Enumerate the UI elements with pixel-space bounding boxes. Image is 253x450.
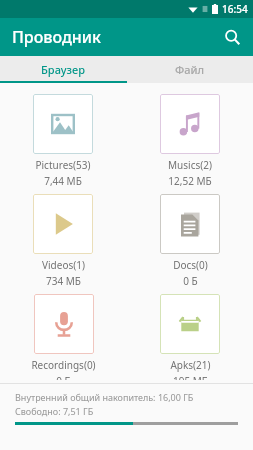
staticText: 734 МБ: [46, 274, 81, 288]
staticText: Docs(0): [173, 258, 208, 272]
staticText: Recordings(0): [31, 358, 96, 372]
staticText: 195 МБ: [173, 374, 208, 380]
staticText: Браузер: [41, 62, 85, 77]
staticText: 7,44 МБ: [44, 174, 82, 188]
staticText: 12,52 МБ: [168, 174, 212, 188]
button[interactable]: Videos(1): [33, 191, 93, 291]
staticText: Внутренний общий накопитель: 16,00 ГБ: [15, 391, 194, 403]
button[interactable]: Docs(0): [160, 191, 220, 291]
staticText: Свободно: 7,51 ГБ: [15, 405, 94, 417]
staticText: Проводник: [12, 26, 101, 48]
button[interactable]: Файл: [126, 56, 253, 83]
button[interactable]: Apks(21): [160, 291, 220, 383]
staticText: Pictures(53): [35, 158, 91, 172]
staticText: Musics(2): [168, 158, 212, 172]
staticText: Apks(21): [170, 358, 211, 372]
staticText: Файл: [175, 62, 205, 77]
button[interactable]: Musics(2): [160, 91, 220, 191]
staticText: 0 Б: [56, 374, 71, 380]
staticText: Videos(1): [42, 258, 85, 272]
button[interactable]: Recordings(0): [31, 291, 96, 383]
staticText: 0 Б: [183, 274, 198, 288]
button[interactable]: Pictures(53): [33, 91, 93, 191]
button[interactable]: Search: [216, 21, 248, 53]
button[interactable]: Браузер: [0, 56, 126, 83]
staticText: 16:54: [222, 2, 248, 16]
